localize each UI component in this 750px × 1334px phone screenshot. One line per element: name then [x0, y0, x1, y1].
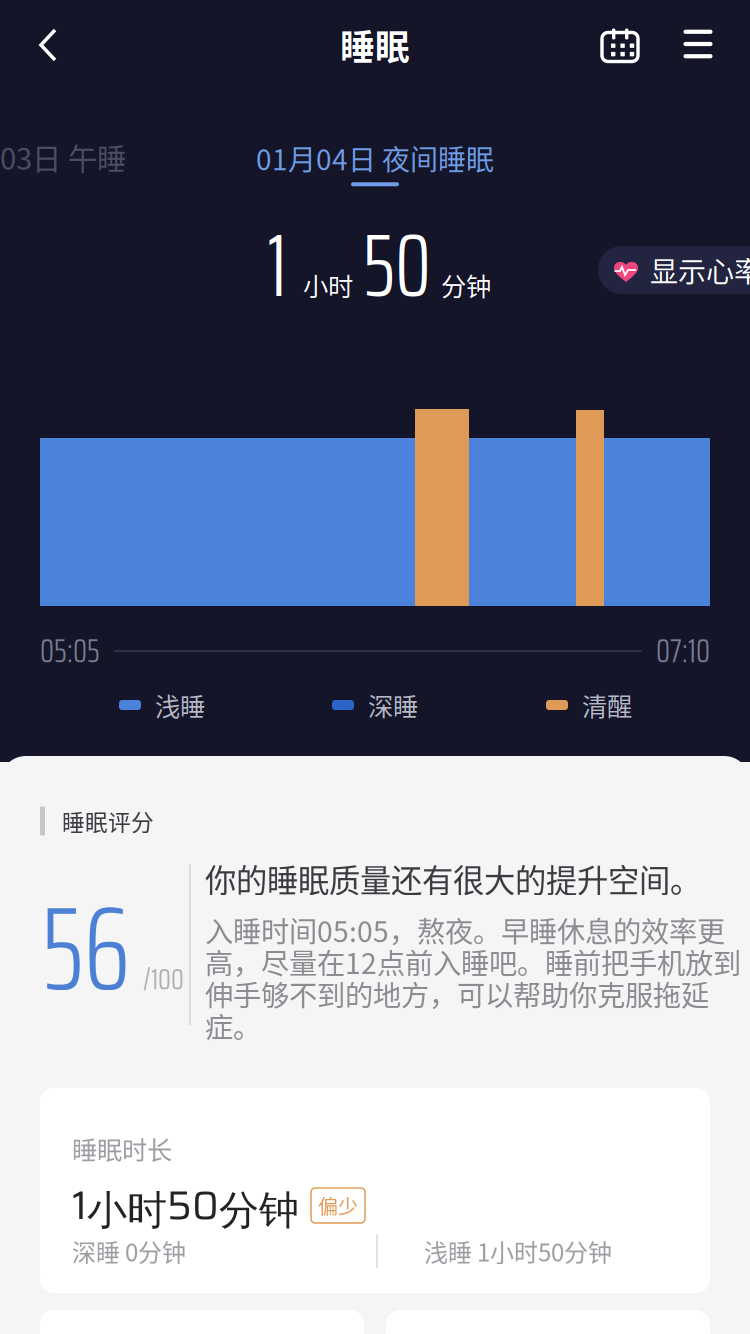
staticText: 50 [363, 195, 431, 335]
button[interactable]: Calendar [582, 0, 658, 86]
staticText: 显示心率 [650, 250, 750, 290]
staticText: 深睡 0分钟 [72, 1234, 186, 1268]
staticText: 睡眠评分 [62, 805, 154, 837]
staticText: 深睡 [368, 687, 418, 723]
staticText: 浅睡 1小时50分钟 [424, 1234, 612, 1268]
staticText: 入睡时间05:05，熬夜。早睡休息的效率更高，尽量在12点前入睡吧。睡前把手机放… [205, 909, 741, 1046]
button[interactable]: Menu [660, 0, 736, 88]
button[interactable]: Back [9, 0, 87, 90]
staticText: /100 [143, 956, 184, 1002]
staticText: 清醒 [582, 687, 632, 723]
staticText: 05:05 [40, 626, 100, 676]
staticText: 03日 午睡 [0, 136, 126, 178]
staticText: 睡眠 [340, 20, 410, 70]
staticText: 小时 [303, 267, 353, 303]
staticText: 1 [267, 195, 287, 335]
button[interactable]: 03日 午睡 [0, 134, 180, 180]
button[interactable]: 01月04日 夜间睡眠 [225, 134, 525, 190]
staticText: 07:10 [656, 626, 710, 676]
staticText: 56 [42, 856, 130, 1041]
staticText: 1小时50分钟 [72, 1174, 299, 1237]
staticText: 偏少 [318, 1191, 358, 1220]
staticText: 01月04日 夜间睡眠 [256, 138, 494, 178]
staticText: 分钟 [441, 267, 491, 303]
staticText: 浅睡 [155, 687, 205, 723]
button[interactable]: 显示心率 [598, 246, 750, 294]
staticText: 你的睡眠质量还有很大的提升空间。 [205, 856, 701, 901]
staticText: 睡眠时长 [72, 1130, 172, 1167]
